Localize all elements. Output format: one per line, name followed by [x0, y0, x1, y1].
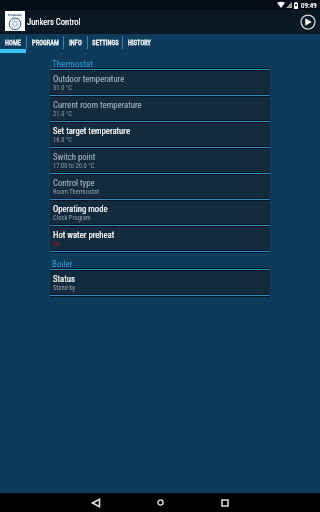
staticText: Thermostat — [52, 59, 94, 70]
staticText: Status — [53, 274, 75, 284]
button[interactable]: Control type — [50, 175, 270, 198]
staticText: Switch point — [53, 152, 96, 162]
staticText: 16.0 °C — [53, 136, 72, 144]
button[interactable]: Hot water preheat — [50, 227, 270, 250]
staticText: 17:00 to 20.0 °C — [53, 162, 95, 170]
button[interactable]: HOME — [0, 34, 26, 53]
staticText: Outdoor temperature — [53, 74, 125, 84]
staticText: Hot water preheat — [53, 230, 115, 240]
staticText: SETTINGS — [92, 39, 119, 46]
staticText: Operating mode — [53, 204, 108, 214]
staticText: Current room temperature — [53, 100, 142, 110]
staticText: Room Thermostat — [53, 188, 99, 196]
button[interactable]: SETTINGS — [88, 34, 122, 53]
button[interactable]: Current room temperature — [50, 97, 270, 120]
staticText: HOME — [5, 39, 21, 46]
staticText: 31.0 °C — [53, 84, 72, 92]
button[interactable]: Back — [83, 493, 109, 512]
button[interactable]: INFO — [64, 34, 87, 53]
button[interactable]: Operating mode — [50, 201, 270, 224]
button[interactable]: Home — [147, 493, 173, 512]
staticText: 21.0 °C — [53, 110, 72, 118]
button[interactable]: HISTORY — [123, 34, 156, 53]
staticText: 09:49 — [301, 1, 317, 9]
staticText: Control type — [53, 178, 95, 188]
staticText: Set target temperature — [53, 126, 130, 136]
button[interactable]: PROGRAM — [27, 34, 63, 53]
button[interactable]: Switch point — [50, 149, 270, 172]
staticText: On — [53, 240, 61, 248]
staticText: Clock Program — [53, 214, 91, 222]
button[interactable]: Start program — [298, 12, 318, 32]
staticText: INFO — [69, 39, 82, 46]
button[interactable]: Set target temperature — [50, 123, 270, 146]
staticText: Junkers Control — [27, 17, 81, 27]
button[interactable]: Outdoor temperature — [50, 71, 270, 94]
button[interactable]: Recent apps — [212, 493, 238, 512]
staticText: PROGRAM — [32, 39, 59, 46]
staticText: Stand-by — [53, 284, 76, 292]
staticText: HISTORY — [128, 39, 151, 46]
button[interactable]: Status — [50, 271, 270, 294]
staticText: Boiler — [52, 259, 73, 270]
